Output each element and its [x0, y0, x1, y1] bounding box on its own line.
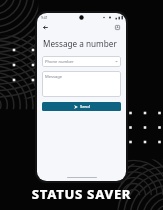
button[interactable]: Back	[41, 23, 50, 32]
staticText: Message a number	[43, 38, 117, 49]
button[interactable]: Pick contact	[113, 23, 122, 32]
staticText: 9:41	[41, 15, 48, 20]
button[interactable]: Message	[42, 71, 121, 97]
staticText: Send	[80, 104, 90, 110]
button[interactable]: Phone number	[42, 56, 121, 67]
staticText: Message	[45, 74, 63, 80]
staticText: Phone number	[45, 59, 74, 65]
staticText: STATUS SAVER	[0, 185, 163, 203]
button[interactable]: Send	[42, 102, 121, 111]
